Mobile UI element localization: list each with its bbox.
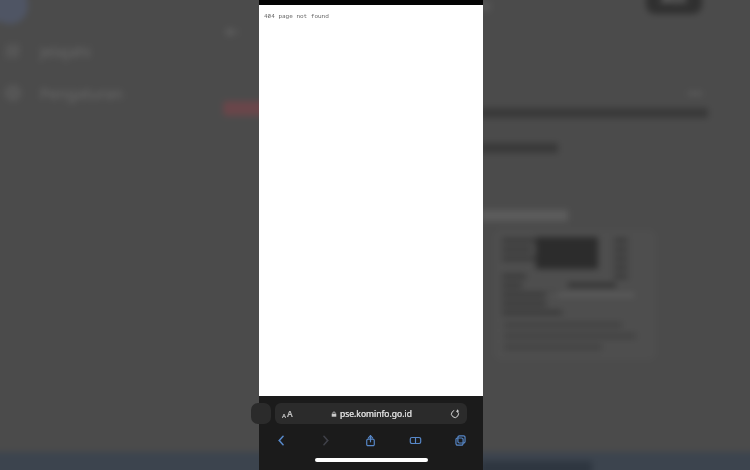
button[interactable]: Pengaturan (4, 83, 123, 103)
button[interactable]: Jelajahi (4, 41, 91, 61)
button[interactable]: Forward (303, 429, 348, 451)
staticText: Ikuti (661, 0, 687, 6)
button[interactable]: Ikuti (646, 0, 702, 14)
staticText: Jelajahi (40, 41, 91, 61)
button[interactable]: Back (259, 429, 303, 451)
button[interactable]: Bookmarks (393, 429, 438, 451)
button[interactable]: A (275, 403, 467, 424)
button[interactable]: Share (348, 429, 393, 451)
staticText: Pengaturan (40, 83, 123, 103)
staticText: pse.kominfo.go.id (340, 408, 412, 420)
button[interactable]: Reload page (450, 409, 460, 419)
staticText: A (287, 408, 293, 420)
button[interactable]: Previous tab (251, 403, 271, 424)
staticText: 404 page not found (264, 12, 329, 20)
button[interactable]: Tabs (438, 429, 483, 451)
staticText: A (282, 412, 287, 420)
